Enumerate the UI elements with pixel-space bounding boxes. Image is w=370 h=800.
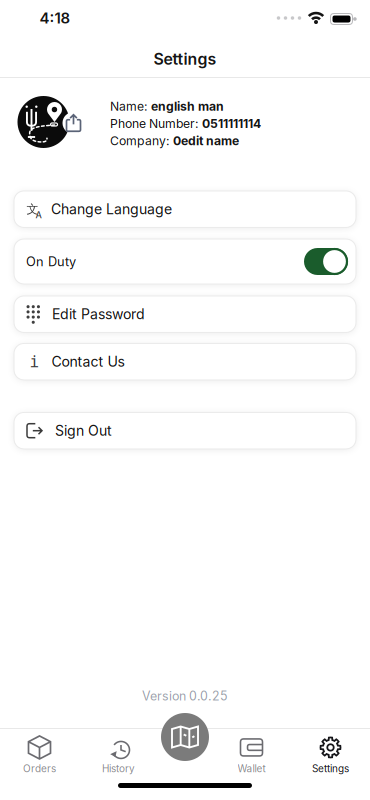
staticText: Version 0.0.25	[142, 688, 228, 703]
button[interactable]: Edit Password	[14, 296, 356, 332]
staticText: 0edit name	[173, 133, 239, 148]
button[interactable]: On Duty	[304, 248, 348, 275]
staticText: Settings	[312, 762, 349, 775]
staticText: 0511111114	[202, 116, 261, 131]
staticText: Sign Out	[55, 422, 112, 439]
button[interactable]: Map	[161, 713, 209, 761]
button[interactable]: Wallet	[237, 735, 265, 775]
staticText: Wallet	[237, 762, 265, 775]
staticText: english man	[151, 99, 224, 114]
staticText: Change Language	[51, 201, 172, 218]
button[interactable]: Orders	[23, 735, 56, 775]
staticText: Contact Us	[51, 353, 124, 370]
staticText: 4:18	[39, 9, 70, 27]
staticText: A	[35, 210, 41, 220]
staticText: On Duty	[26, 254, 76, 269]
staticText: 文	[26, 202, 38, 217]
button[interactable]: i	[14, 343, 356, 380]
staticText: Orders	[23, 762, 56, 775]
staticText: i	[29, 352, 39, 371]
button[interactable]: History	[102, 735, 135, 775]
button[interactable]: Upload profile photo	[62, 112, 84, 134]
staticText: Edit Password	[52, 306, 145, 323]
staticText: Name:	[110, 99, 151, 114]
staticText: Phone Number:	[110, 116, 202, 131]
staticText: Settings	[153, 49, 216, 69]
staticText: Company:	[110, 133, 173, 148]
button[interactable]: Sign Out	[14, 412, 356, 449]
button[interactable]: 文	[14, 191, 356, 227]
staticText: History	[102, 762, 135, 775]
button[interactable]: Settings	[312, 735, 349, 775]
